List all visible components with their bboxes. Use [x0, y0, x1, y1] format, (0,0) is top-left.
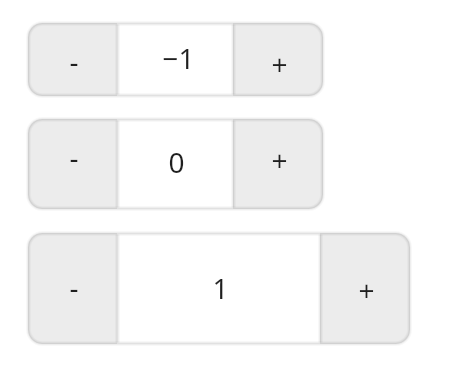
staticText: 0 — [168, 143, 185, 181]
staticText: + — [271, 45, 288, 83]
staticText: - — [69, 138, 79, 176]
staticText: + — [271, 141, 288, 179]
button[interactable]: Increase value — [320, 233, 410, 344]
staticText: - — [69, 42, 79, 80]
staticText: −1 — [162, 39, 195, 77]
staticText: 1 — [212, 269, 229, 307]
button[interactable]: Increase value — [233, 119, 323, 209]
staticText: + — [358, 271, 375, 309]
staticText: - — [69, 268, 79, 306]
button[interactable]: Decrease value — [28, 119, 117, 209]
button[interactable]: Decrease value — [28, 23, 117, 96]
button[interactable]: Increase value — [233, 23, 323, 96]
button[interactable]: Decrease value — [28, 233, 117, 344]
